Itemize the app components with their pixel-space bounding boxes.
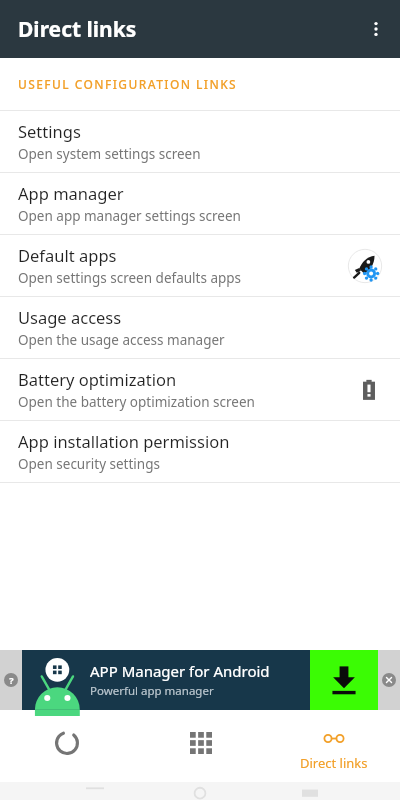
button[interactable]: Usage access — [0, 297, 400, 358]
staticText: APP Manager for Android — [90, 661, 270, 681]
button[interactable]: Close ad — [378, 650, 400, 710]
staticText: Open app manager settings screen — [18, 207, 241, 225]
staticText: Powerful app manager — [90, 683, 214, 699]
staticText: Open security settings — [18, 455, 160, 473]
staticText: Usage access — [18, 306, 122, 328]
staticText: Direct links — [18, 15, 137, 44]
staticText: Direct links — [300, 754, 368, 772]
button[interactable]: APP Manager for Android — [22, 650, 310, 710]
button[interactable]: Direct links — [267, 716, 400, 782]
staticText: Open settings screen defaults apps — [18, 269, 242, 287]
staticText: Battery optimization — [18, 368, 177, 390]
staticText: Open system settings screen — [18, 145, 201, 163]
button[interactable]: App manager — [0, 173, 400, 234]
staticText: Open the usage access manager — [18, 331, 225, 349]
staticText: USEFUL CONFIGURATION LINKS — [18, 76, 238, 92]
staticText: Settings — [18, 120, 81, 142]
button[interactable]: Settings — [0, 111, 400, 172]
button[interactable]: Default apps — [0, 235, 400, 296]
button[interactable]: Install — [310, 650, 378, 710]
staticText: App manager — [18, 182, 124, 204]
button[interactable]: Apps — [134, 716, 267, 782]
button[interactable]: Status — [0, 716, 134, 782]
button[interactable]: Battery optimization — [0, 359, 400, 420]
staticText: Open the battery optimization screen — [18, 393, 255, 411]
button[interactable]: App installation permission — [0, 421, 400, 482]
staticText: App installation permission — [18, 430, 230, 452]
staticText: ? — [9, 674, 14, 686]
button[interactable]: More options — [352, 5, 400, 53]
button[interactable]: Ad info — [0, 650, 22, 710]
staticText: Default apps — [18, 244, 117, 266]
